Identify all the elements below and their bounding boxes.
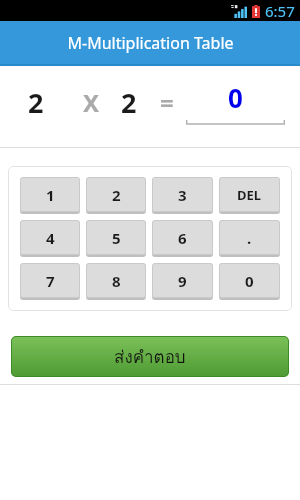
button[interactable]: 2: [86, 177, 146, 212]
staticText: M-Multiplication Table: [67, 32, 234, 54]
staticText: 2: [112, 185, 121, 205]
staticText: 0: [245, 271, 254, 291]
staticText: =: [160, 86, 174, 119]
button[interactable]: 0: [219, 263, 280, 298]
staticText: 6:57: [265, 1, 295, 21]
button[interactable]: DEL: [219, 177, 280, 212]
button[interactable]: 7: [20, 263, 80, 298]
staticText: 1: [46, 185, 55, 205]
staticText: 7: [46, 271, 55, 291]
staticText: 0: [228, 80, 243, 115]
staticText: 6: [178, 228, 187, 248]
button[interactable]: ส่งคำตอบ: [11, 336, 289, 377]
button[interactable]: 3: [152, 177, 213, 212]
button[interactable]: 0: [186, 80, 285, 125]
button[interactable]: 4: [20, 220, 80, 255]
staticText: 2: [28, 84, 44, 121]
staticText: 9: [178, 271, 187, 291]
staticText: .: [247, 228, 252, 248]
staticText: 3: [178, 185, 187, 205]
button[interactable]: 6: [152, 220, 213, 255]
button[interactable]: .: [219, 220, 280, 255]
staticText: 5: [112, 228, 121, 248]
staticText: 8: [112, 271, 121, 291]
staticText: X: [83, 86, 100, 119]
staticText: ส่งคำตอบ: [114, 343, 186, 370]
button[interactable]: 9: [152, 263, 213, 298]
button[interactable]: 5: [86, 220, 146, 255]
button[interactable]: 8: [86, 263, 146, 298]
staticText: 2: [121, 84, 137, 121]
staticText: DEL: [237, 186, 262, 204]
staticText: 4: [46, 228, 55, 248]
button[interactable]: 1: [20, 177, 80, 212]
